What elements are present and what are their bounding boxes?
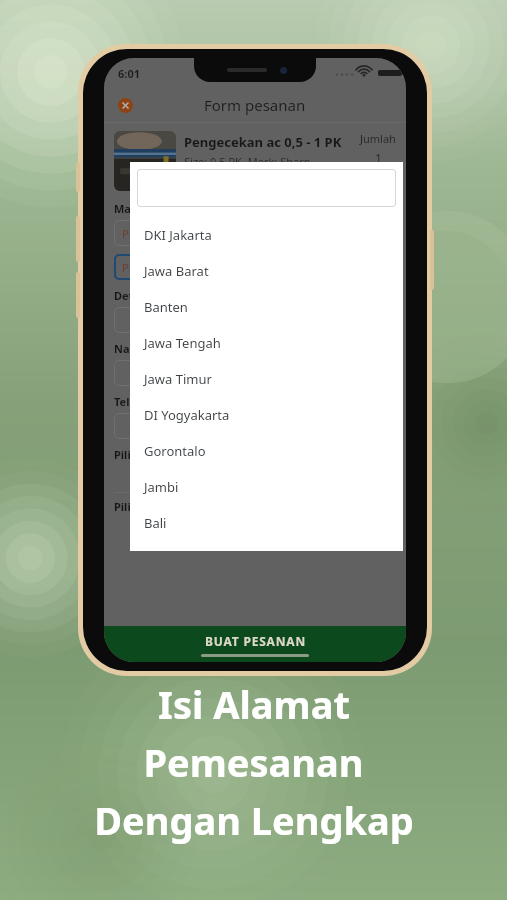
staticText: Masukan Alamat: [114, 201, 207, 216]
staticText: Pilih Kota: [122, 260, 171, 275]
staticText: Jawa Timur: [144, 370, 212, 388]
button[interactable]: Jawa Timur: [130, 361, 403, 397]
staticText: DI Yogyakarta: [144, 406, 230, 424]
staticText: Pilih Jam: [114, 499, 162, 514]
staticText: 1: [375, 150, 382, 166]
staticText: Form pesanan: [204, 95, 306, 115]
staticText: Pemesanan: [143, 736, 364, 788]
button[interactable]: Gorontalo: [130, 433, 403, 469]
staticText: Pilih Provinsi: [122, 226, 188, 241]
button[interactable]: Pilih Provinsi: [122, 220, 388, 246]
button[interactable]: masukan no telepon: [122, 413, 388, 439]
button[interactable]: Close: [114, 94, 136, 116]
staticText: Size: 0.5 PK, Merk: Sharp,: [184, 154, 314, 169]
staticText: masukan no telepon: [122, 419, 228, 434]
button[interactable]: Jawa Tengah: [130, 325, 403, 361]
staticText: Bali: [144, 514, 167, 532]
staticText: Isi Alamat: [158, 678, 350, 730]
staticText: Jumlah: [360, 131, 396, 146]
staticText: 6:01: [118, 66, 140, 81]
button[interactable]: masukan nama: [122, 360, 388, 386]
staticText: Jambi: [144, 478, 179, 496]
staticText: Gorontalo: [144, 442, 206, 460]
staticText: BUAT PESANAN: [205, 633, 306, 649]
button[interactable]: Bali: [130, 505, 403, 541]
button[interactable]: DI Yogyakarta: [130, 397, 403, 433]
staticText: Pilih Tanggal: [114, 447, 184, 462]
staticText: Pengecekan ac 0,5 - 1 PK: [184, 133, 342, 151]
button[interactable]: DKI Jakarta: [130, 217, 403, 253]
staticText: Jawa Barat: [144, 262, 209, 280]
staticText: Masukan detail alamat: [122, 313, 240, 328]
button[interactable]: BUAT PESANAN: [104, 626, 406, 662]
button[interactable]: Pilih Kota: [122, 254, 388, 280]
button[interactable]: Jawa Barat: [130, 253, 403, 289]
staticText: Jawa Tengah: [144, 334, 221, 352]
button[interactable]: [137, 169, 396, 207]
staticText: masukan nama: [122, 366, 202, 381]
staticText: Telepon: [114, 394, 157, 409]
staticText: Detail Alamat: [114, 288, 189, 303]
staticText: Dengan Lengkap: [94, 794, 414, 846]
button[interactable]: Masukan detail alamat: [122, 307, 388, 333]
button[interactable]: Banten: [130, 289, 403, 325]
staticText: Nama Pemesan: [114, 341, 200, 356]
staticText: Banten: [144, 298, 188, 316]
staticText: DKI Jakarta: [144, 226, 212, 244]
button[interactable]: Jambi: [130, 469, 403, 505]
